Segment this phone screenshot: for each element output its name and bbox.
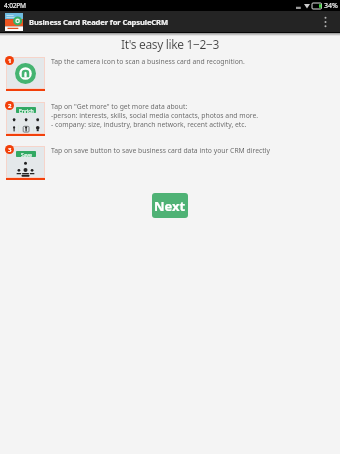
staticText: Tap the camera icon to scan a business c… bbox=[51, 57, 245, 66]
button[interactable]: More options bbox=[311, 11, 340, 32]
staticText: 4:02PM bbox=[4, 1, 26, 10]
staticText: Business Card Reader for CapsuleCRM bbox=[29, 17, 168, 27]
staticText: Tap on "Get more" to get more data about… bbox=[51, 102, 259, 129]
staticText: Tap on save button to save business card… bbox=[51, 146, 270, 155]
staticText: It's easy like 1−2−3 bbox=[0, 36, 340, 52]
staticText: Next bbox=[154, 197, 186, 215]
button[interactable]: Next bbox=[152, 193, 188, 218]
staticText: 1 bbox=[8, 57, 12, 65]
staticText: 3 bbox=[8, 146, 12, 154]
staticText: Enrich bbox=[19, 107, 34, 113]
staticText: 2 bbox=[8, 102, 12, 110]
staticText: Save bbox=[21, 151, 32, 157]
staticText: 34% bbox=[324, 1, 338, 11]
